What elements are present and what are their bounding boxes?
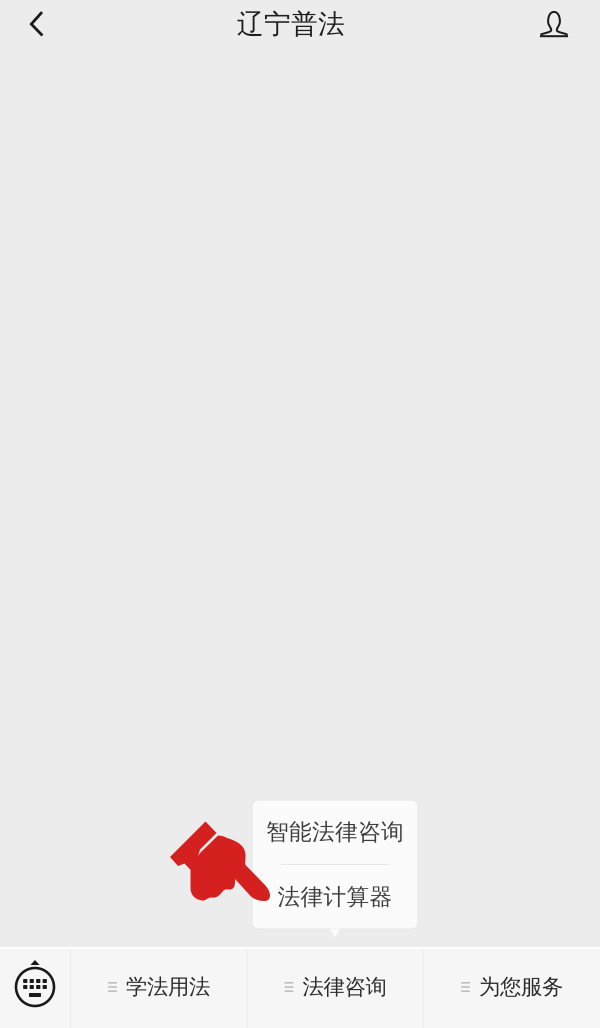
button[interactable]: 为您服务 (424, 949, 600, 1028)
staticText: 为您服务 (479, 974, 563, 1000)
button[interactable]: 法律咨询 (248, 949, 423, 1028)
staticText: 法律咨询 (302, 974, 386, 1000)
button[interactable]: 返回 (0, 0, 74, 48)
button[interactable]: 键盘 (0, 949, 70, 1028)
staticText: 智能法律咨询 (266, 818, 404, 846)
staticText: 法律计算器 (277, 883, 392, 911)
button[interactable]: 法律计算器 (252, 865, 418, 929)
button[interactable]: 个人中心 (508, 0, 600, 48)
button[interactable]: 智能法律咨询 (252, 800, 418, 864)
staticText: 辽宁普法 (237, 8, 345, 40)
button[interactable]: 学法用法 (71, 949, 247, 1028)
staticText: 学法用法 (126, 974, 210, 1000)
